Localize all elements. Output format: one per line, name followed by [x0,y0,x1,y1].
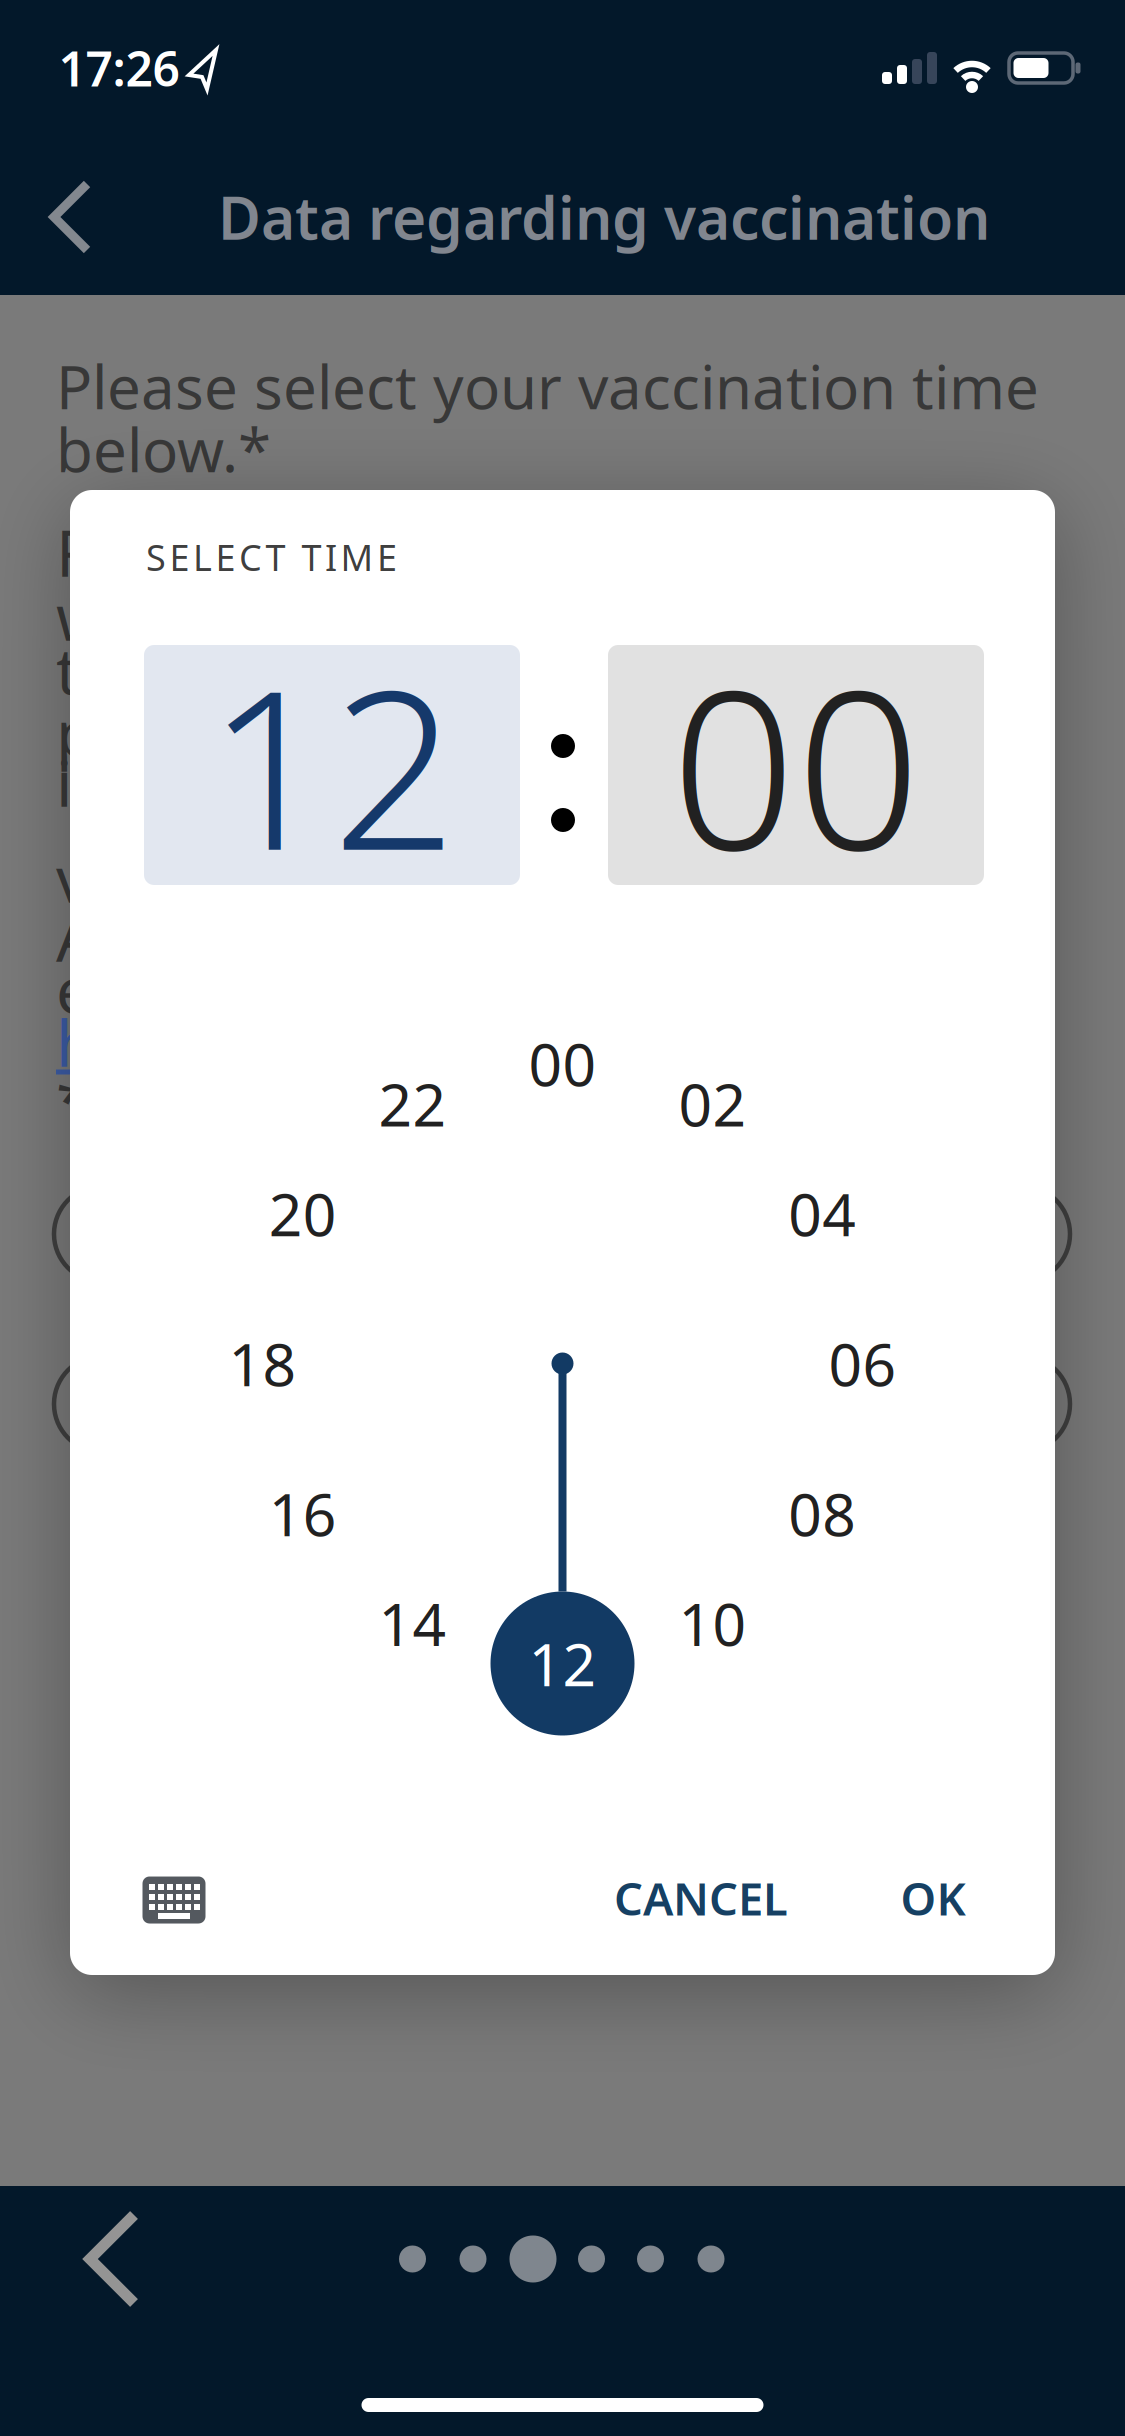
staticText: Please select your vaccination time [56,346,1039,426]
staticText: t [56,627,79,712]
staticText: 14 [378,1584,446,1662]
staticText: 12 [528,1624,596,1702]
staticText: Data regarding vaccination [218,178,990,256]
staticText: F [56,509,89,594]
staticText: 20 [269,1174,337,1252]
staticText: w [56,573,106,658]
staticText: SELECT TIME [146,533,397,581]
staticText: 18 [228,1324,296,1402]
staticText: 17:26 [58,36,179,100]
staticText: 00 [671,620,921,910]
staticText: OK [900,1868,965,1928]
staticText: CANCEL [614,1868,788,1928]
staticText: 00 [528,1024,596,1102]
staticText: A [56,894,97,979]
staticText: 08 [788,1474,856,1552]
staticText: below.* [56,409,271,489]
staticText: 04 [788,1174,856,1252]
staticText: 10 [678,1584,746,1662]
staticText: 12 [207,620,457,910]
staticText: 02 [678,1065,746,1143]
staticText: 16 [269,1474,337,1552]
staticText: h [56,999,96,1084]
staticText: p [56,689,95,774]
staticText: e [56,946,92,1031]
staticText: 22 [378,1065,446,1143]
staticText: v [56,835,89,920]
staticText: * [56,1057,91,1142]
staticText: 06 [828,1324,896,1402]
staticText: i [56,739,73,824]
